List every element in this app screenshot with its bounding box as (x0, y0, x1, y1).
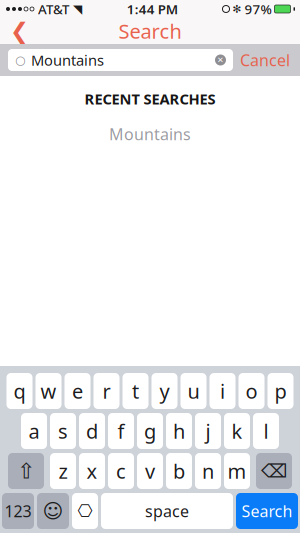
button[interactable]: i (209, 373, 235, 409)
button[interactable]: s (50, 413, 76, 449)
staticText: ✻ (232, 3, 241, 15)
staticText: ☺ (42, 500, 63, 522)
button[interactable]: x (79, 453, 105, 489)
button[interactable]: v (137, 453, 163, 489)
button[interactable]: f (108, 413, 134, 449)
button[interactable]: ○ (8, 49, 233, 71)
button[interactable]: space (101, 493, 233, 529)
button[interactable]: y (151, 373, 177, 409)
button[interactable]: Numbers (2, 493, 34, 529)
staticText: q (13, 378, 25, 404)
staticText: l (263, 418, 268, 444)
button[interactable]: g (137, 413, 163, 449)
staticText: h (173, 418, 185, 444)
button[interactable]: m (224, 453, 250, 489)
button[interactable]: Dictation (72, 493, 98, 529)
staticText: e (72, 378, 83, 404)
button[interactable]: Cancel (233, 45, 297, 75)
staticText: Search (118, 18, 181, 44)
staticText: ◥ (73, 2, 82, 16)
staticText: w (40, 378, 56, 404)
staticText: u (187, 378, 199, 404)
staticText: 1:44 PM (127, 0, 178, 18)
staticText: n (202, 458, 214, 484)
button[interactable]: l (253, 413, 279, 449)
button[interactable]: d (79, 413, 105, 449)
button[interactable]: k (224, 413, 250, 449)
staticText: ⇧ (17, 459, 35, 483)
staticText: j (205, 418, 210, 444)
staticText: a (28, 418, 39, 444)
button[interactable]: Back (0, 18, 44, 44)
staticText: g (144, 418, 156, 444)
button[interactable]: b (166, 453, 192, 489)
button[interactable]: Delete (256, 453, 292, 489)
staticText: ❮ (10, 18, 29, 44)
staticText: k (231, 418, 242, 444)
staticText: 123 (4, 500, 31, 522)
staticText: c (116, 458, 126, 484)
staticText: Mountains (109, 123, 191, 145)
staticText: b (173, 458, 185, 484)
staticText: 97% (244, 0, 271, 18)
button[interactable]: j (195, 413, 221, 449)
staticText: Cancel (240, 49, 290, 71)
staticText: v (145, 458, 155, 484)
staticText: r (102, 378, 110, 404)
staticText: t (132, 378, 139, 404)
staticText: d (86, 418, 98, 444)
staticText: x (86, 458, 97, 484)
staticText: f (117, 418, 124, 444)
button[interactable]: o (238, 373, 264, 409)
staticText: p (274, 378, 286, 404)
staticText: s (58, 418, 68, 444)
button[interactable]: q (6, 373, 32, 409)
button[interactable]: a (21, 413, 47, 449)
button[interactable]: u (180, 373, 206, 409)
staticText: m (227, 458, 246, 484)
staticText: ○ (15, 53, 25, 67)
staticText: space (145, 500, 189, 522)
button[interactable]: e (64, 373, 90, 409)
staticText: o (245, 378, 257, 404)
staticText: Mountains (31, 50, 104, 70)
button[interactable]: h (166, 413, 192, 449)
button[interactable]: Search (236, 493, 298, 529)
staticText: i (220, 378, 225, 404)
staticText: RECENT SEARCHES (84, 89, 215, 108)
staticText: Search (241, 500, 292, 522)
button[interactable]: Emoji (37, 493, 69, 529)
staticText: y (159, 378, 169, 404)
button[interactable]: Shift (8, 453, 44, 489)
staticText: ✕ (217, 55, 224, 65)
staticText: ⌫ (261, 460, 287, 482)
button[interactable]: p (267, 373, 293, 409)
button[interactable]: z (50, 453, 76, 489)
staticText: z (58, 458, 67, 484)
staticText: ⎔ (77, 501, 92, 521)
staticText: AT&T (38, 0, 69, 18)
button[interactable]: r (93, 373, 119, 409)
button[interactable]: w (35, 373, 61, 409)
button[interactable]: t (122, 373, 148, 409)
button[interactable]: c (108, 453, 134, 489)
button[interactable]: n (195, 453, 221, 489)
button[interactable]: Mountains (0, 117, 300, 151)
